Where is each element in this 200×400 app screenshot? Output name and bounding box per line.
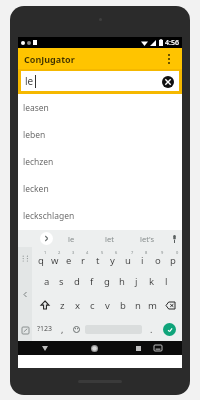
button[interactable]: le <box>21 71 179 91</box>
staticText: ?123 <box>37 324 53 334</box>
button[interactable]: 0 <box>165 247 180 270</box>
button[interactable]: Voice input <box>166 230 182 247</box>
staticText: 2 <box>58 250 61 255</box>
staticText: m <box>148 299 157 312</box>
button[interactable]: h <box>114 270 129 293</box>
staticText: r <box>81 254 85 267</box>
button[interactable]: Emoji <box>69 317 83 341</box>
staticText: 5 <box>101 250 104 255</box>
staticText: 7 <box>131 250 134 255</box>
staticText: 9 <box>161 250 164 255</box>
staticText: leben <box>23 129 46 141</box>
button[interactable]: v <box>100 293 115 317</box>
button[interactable]: Previous <box>19 288 31 300</box>
button[interactable]: Hide keyboard <box>152 342 164 354</box>
button[interactable]: l <box>159 270 174 293</box>
staticText: leasen <box>23 102 49 114</box>
button[interactable]: leasen <box>18 94 182 121</box>
button[interactable]: Backspace <box>160 293 180 317</box>
button[interactable]: Search <box>163 323 176 336</box>
staticText: leckschlagen <box>23 210 75 222</box>
staticText: o <box>155 254 161 267</box>
button[interactable]: Period <box>144 317 158 341</box>
staticText: j <box>135 275 138 288</box>
staticText: lecken <box>23 183 49 195</box>
button[interactable]: s <box>54 270 69 293</box>
staticText: p <box>170 254 176 267</box>
button[interactable]: leckschlagen <box>18 202 182 229</box>
staticText: x <box>75 299 81 312</box>
staticText: b <box>120 299 126 312</box>
button[interactable]: ?123 <box>34 317 55 341</box>
staticText: w <box>51 254 59 267</box>
staticText: . <box>150 323 153 335</box>
button[interactable]: 6 <box>105 247 120 270</box>
button[interactable]: c <box>85 293 100 317</box>
button[interactable]: Comma <box>55 317 69 341</box>
button[interactable]: 2 <box>48 247 62 270</box>
button[interactable]: g <box>99 270 114 293</box>
button[interactable]: 5 <box>90 247 105 270</box>
staticText: 1 <box>44 250 47 255</box>
staticText: 3 <box>72 250 75 255</box>
button[interactable]: 9 <box>150 247 165 270</box>
button[interactable]: let <box>90 230 128 247</box>
button[interactable]: le <box>53 230 90 247</box>
staticText: c <box>90 299 95 312</box>
button[interactable]: m <box>145 293 160 317</box>
button[interactable]: j <box>129 270 144 293</box>
staticText: h <box>119 275 125 288</box>
button[interactable]: x <box>70 293 85 317</box>
button[interactable]: Handwriting <box>19 324 31 336</box>
staticText: le <box>25 74 34 88</box>
button[interactable]: 4 <box>76 247 90 270</box>
button[interactable]: Clipboard <box>19 252 31 264</box>
button[interactable]: Expand toolbar <box>40 232 53 245</box>
staticText: y <box>110 254 115 267</box>
button[interactable]: k <box>144 270 159 293</box>
button[interactable]: Clear search <box>161 75 174 88</box>
button[interactable]: n <box>130 293 145 317</box>
button[interactable]: a <box>40 270 54 293</box>
button[interactable]: 7 <box>120 247 135 270</box>
button[interactable]: Shift <box>34 293 55 317</box>
button[interactable]: 3 <box>62 247 76 270</box>
button[interactable]: let's <box>128 230 166 247</box>
button[interactable]: More options <box>161 51 177 67</box>
staticText: ConJugator <box>24 53 75 65</box>
button[interactable]: 1 <box>34 247 48 270</box>
staticText: n <box>135 299 141 312</box>
staticText: f <box>90 275 94 288</box>
staticText: e <box>66 254 72 267</box>
staticText: z <box>60 299 65 312</box>
staticText: 4 <box>86 250 89 255</box>
staticText: k <box>149 275 155 288</box>
button[interactable]: Back <box>39 342 51 354</box>
staticText: a <box>44 275 50 288</box>
button[interactable]: leben <box>18 121 182 148</box>
staticText: 6 <box>115 250 118 255</box>
staticText: lechzen <box>23 156 54 168</box>
button[interactable]: Home <box>88 342 100 354</box>
button[interactable]: 8 <box>135 247 150 270</box>
staticText: i <box>141 254 144 267</box>
staticText: 4:56 <box>165 38 179 48</box>
button[interactable]: z <box>55 293 70 317</box>
staticText: q <box>38 254 44 267</box>
staticText: 0 <box>176 250 179 255</box>
staticText: t <box>96 254 100 267</box>
button[interactable]: Recent apps <box>132 342 144 354</box>
button[interactable]: b <box>115 293 130 317</box>
staticText: , <box>61 323 64 335</box>
staticText: let <box>105 234 114 244</box>
button[interactable]: d <box>69 270 84 293</box>
button[interactable]: f <box>84 270 99 293</box>
staticText: 8 <box>145 250 148 255</box>
staticText: u <box>125 254 131 267</box>
button[interactable]: lecken <box>18 175 182 202</box>
button[interactable]: lechzen <box>18 148 182 175</box>
staticText: d <box>74 275 80 288</box>
staticText: v <box>105 299 110 312</box>
staticText: l <box>165 275 168 288</box>
